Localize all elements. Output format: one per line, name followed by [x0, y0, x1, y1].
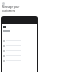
button[interactable] — [3, 48, 36, 53]
button[interactable] — [3, 43, 36, 48]
button[interactable] — [3, 38, 36, 43]
button[interactable] — [3, 58, 36, 63]
staticText: Message your customers — [2, 5, 21, 13]
button[interactable]: Business Messages icon — [2, 2, 5, 5]
button[interactable] — [3, 53, 36, 58]
